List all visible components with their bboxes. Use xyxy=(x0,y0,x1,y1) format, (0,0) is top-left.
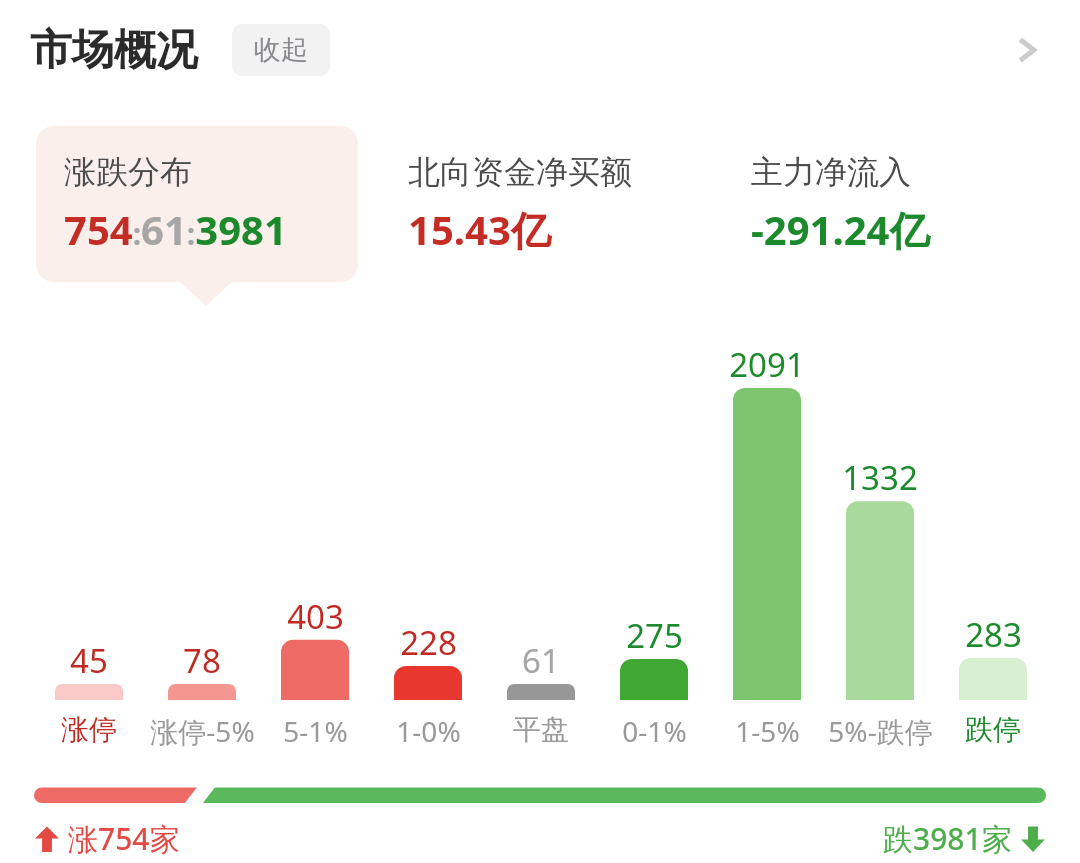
staticText: 5%-跌停 xyxy=(828,712,933,750)
button[interactable]: 北向资金净买额 xyxy=(380,126,701,283)
staticText: 228 xyxy=(400,620,457,665)
staticText: 1332 xyxy=(842,455,918,500)
button[interactable]: 1-5% xyxy=(711,712,823,750)
staticText: 754:61:3981 xyxy=(64,202,287,256)
button[interactable]: 5%-跌停 xyxy=(824,712,936,750)
button[interactable]: 0-1% xyxy=(598,712,710,750)
staticText: 5-1% xyxy=(283,712,348,750)
button[interactable]: 跌停 xyxy=(937,712,1049,747)
button[interactable]: 1-0% xyxy=(372,712,484,750)
staticText: 主力净流入 xyxy=(751,152,911,192)
staticText: 涨停-5% xyxy=(150,712,255,750)
staticText: 1-5% xyxy=(735,712,800,750)
staticText: 78 xyxy=(183,638,221,683)
staticText: 61 xyxy=(522,638,560,683)
staticText: 1-0% xyxy=(396,712,461,750)
button[interactable]: 涨跌分布 xyxy=(36,126,358,282)
staticText: 平盘 xyxy=(513,712,569,747)
button[interactable]: 主力净流入 xyxy=(723,126,1044,283)
button[interactable]: More xyxy=(984,7,1070,93)
staticText: 15.43亿 xyxy=(408,202,551,257)
staticText: 涨754家 xyxy=(68,818,180,859)
staticText: 275 xyxy=(626,613,683,658)
staticText: 0-1% xyxy=(622,712,687,750)
staticText: 收起 xyxy=(254,33,308,67)
staticText: 45 xyxy=(70,638,108,683)
button[interactable]: 涨停-5% xyxy=(146,712,258,750)
staticText: 涨跌分布 xyxy=(64,152,192,192)
button[interactable]: 平盘 xyxy=(485,712,597,747)
staticText: 市场概况 xyxy=(30,24,198,77)
staticText: 北向资金净买额 xyxy=(408,152,632,192)
staticText: 跌3981家 xyxy=(883,818,1012,859)
button[interactable]: 5-1% xyxy=(259,712,371,750)
staticText: 2091 xyxy=(729,342,805,387)
staticText: 283 xyxy=(965,612,1022,657)
staticText: 跌停 xyxy=(965,712,1021,747)
button[interactable]: 涨停 xyxy=(33,712,145,747)
staticText: 403 xyxy=(287,594,344,639)
staticText: 涨停 xyxy=(61,712,117,747)
staticText: -291.24亿 xyxy=(751,202,930,257)
button[interactable]: 收起 xyxy=(232,24,330,76)
